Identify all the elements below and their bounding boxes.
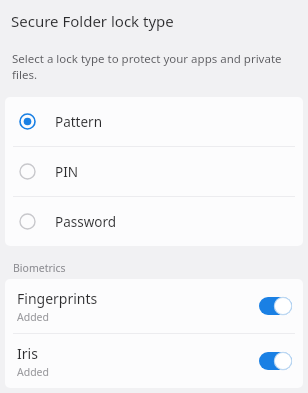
staticText: Password bbox=[55, 213, 117, 231]
button[interactable]: Pattern bbox=[5, 97, 303, 146]
button[interactable]: Toggle bbox=[259, 352, 292, 370]
staticText: Secure Folder lock type bbox=[11, 11, 174, 31]
button[interactable]: Toggle bbox=[259, 297, 292, 315]
staticText: Added bbox=[17, 310, 50, 324]
staticText: Biometrics bbox=[13, 261, 66, 275]
staticText: PIN bbox=[55, 163, 79, 181]
staticText: Added bbox=[17, 365, 50, 379]
button[interactable]: Fingerprints bbox=[5, 279, 303, 333]
staticText: Fingerprints bbox=[17, 289, 98, 308]
button[interactable]: PIN bbox=[5, 147, 303, 196]
staticText: Select a lock type to protect your apps … bbox=[12, 51, 282, 82]
staticText: Pattern bbox=[55, 113, 103, 131]
button[interactable]: Password bbox=[5, 197, 303, 246]
button[interactable]: Iris bbox=[5, 334, 303, 388]
staticText: Iris bbox=[17, 344, 38, 363]
